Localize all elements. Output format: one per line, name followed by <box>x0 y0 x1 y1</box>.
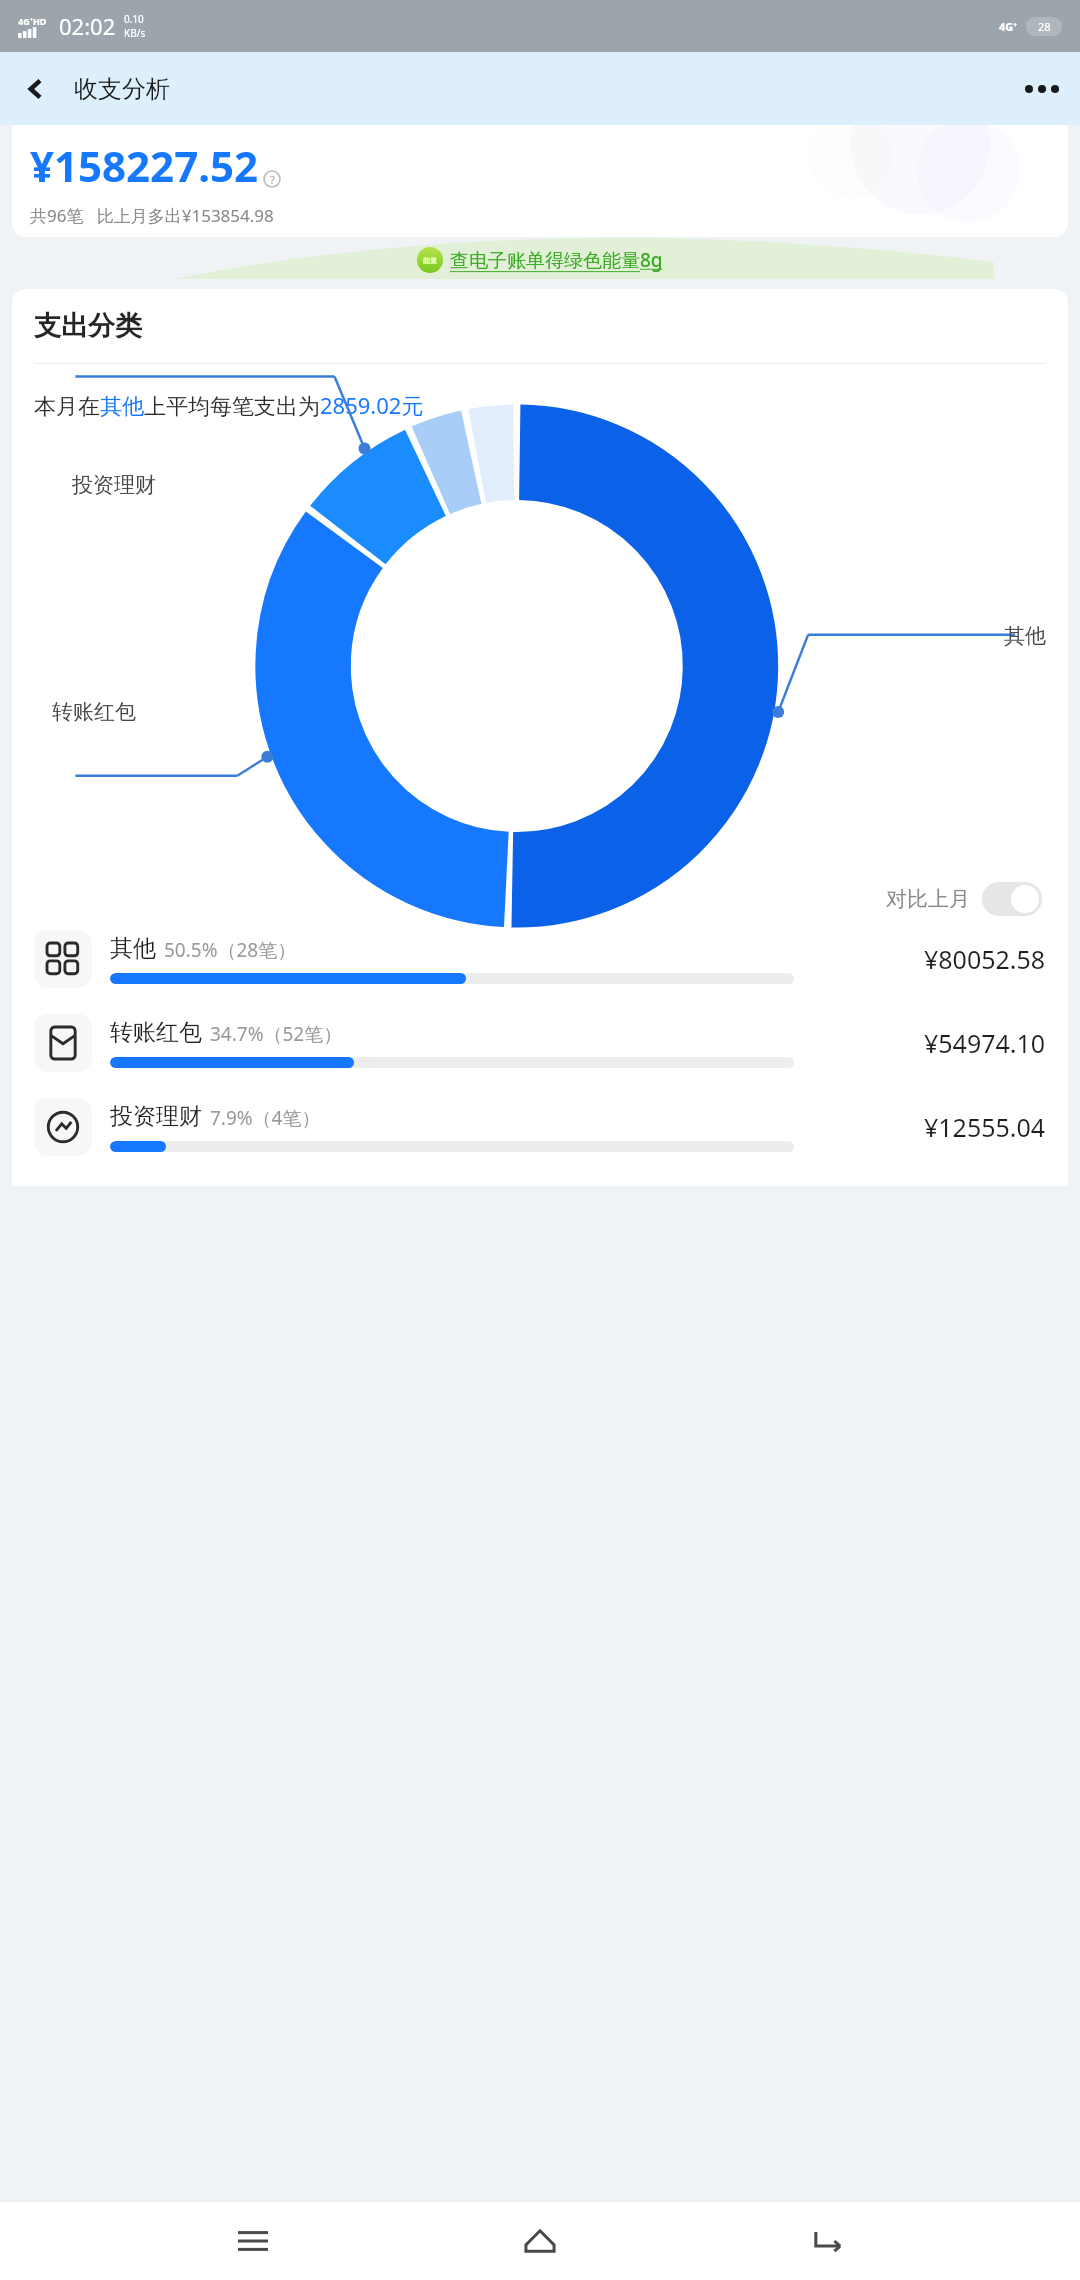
staticText: 转账红包 <box>110 1018 202 1047</box>
staticText: 0.10 <box>124 12 144 26</box>
button[interactable]: Home <box>505 2206 575 2276</box>
staticText: 能量 <box>423 256 437 265</box>
button[interactable]: 投资理财 <box>34 1098 1046 1156</box>
staticText: ¥158227.52 <box>30 137 259 194</box>
button[interactable]: Recent apps <box>218 2206 288 2276</box>
staticText: ? <box>270 172 275 187</box>
staticText: 查电子账单得绿色能量8g <box>450 247 663 273</box>
staticText: 本月在其他上平均每笔支出为2859.02元 <box>34 390 424 420</box>
button[interactable]: More options <box>1018 65 1066 113</box>
staticText: 02:02 <box>59 11 116 41</box>
button[interactable]: 转账红包 <box>34 1014 1046 1072</box>
button[interactable]: Info <box>263 170 281 188</box>
staticText: 转账红包 <box>52 699 136 725</box>
staticText: 共96笔 比上月多出¥153854.98 <box>30 204 274 227</box>
staticText: 50.5%（28笔） <box>164 937 297 963</box>
button[interactable]: ¥158227.52 <box>12 125 1068 237</box>
button[interactable]: Back <box>793 2206 863 2276</box>
staticText: ¥80052.58 <box>924 942 1046 976</box>
staticText: ¥12555.04 <box>924 1110 1046 1144</box>
staticText: 投资理财 <box>110 1102 202 1131</box>
staticText: 34.7%（52笔） <box>210 1021 343 1047</box>
button[interactable]: 能量 <box>417 247 663 273</box>
staticText: 28 <box>1038 19 1051 34</box>
staticText: 对比上月 <box>886 886 970 912</box>
staticText: 4G⁺HD <box>18 15 47 27</box>
staticText: 7.9%（4笔） <box>210 1105 321 1131</box>
staticText: KB/s <box>124 26 146 40</box>
button[interactable]: 对比上月 <box>886 882 1042 916</box>
staticText: 收支分析 <box>74 74 170 104</box>
button[interactable]: 其他 <box>34 930 1046 988</box>
button[interactable]: Back <box>14 67 58 111</box>
staticText: 其他 <box>1004 623 1046 649</box>
staticText: 支出分类 <box>34 309 142 343</box>
staticText: 4G⁺ <box>999 19 1018 34</box>
staticText: 其他 <box>110 934 156 963</box>
staticText: 投资理财 <box>72 472 156 498</box>
staticText: ¥54974.10 <box>924 1026 1046 1060</box>
